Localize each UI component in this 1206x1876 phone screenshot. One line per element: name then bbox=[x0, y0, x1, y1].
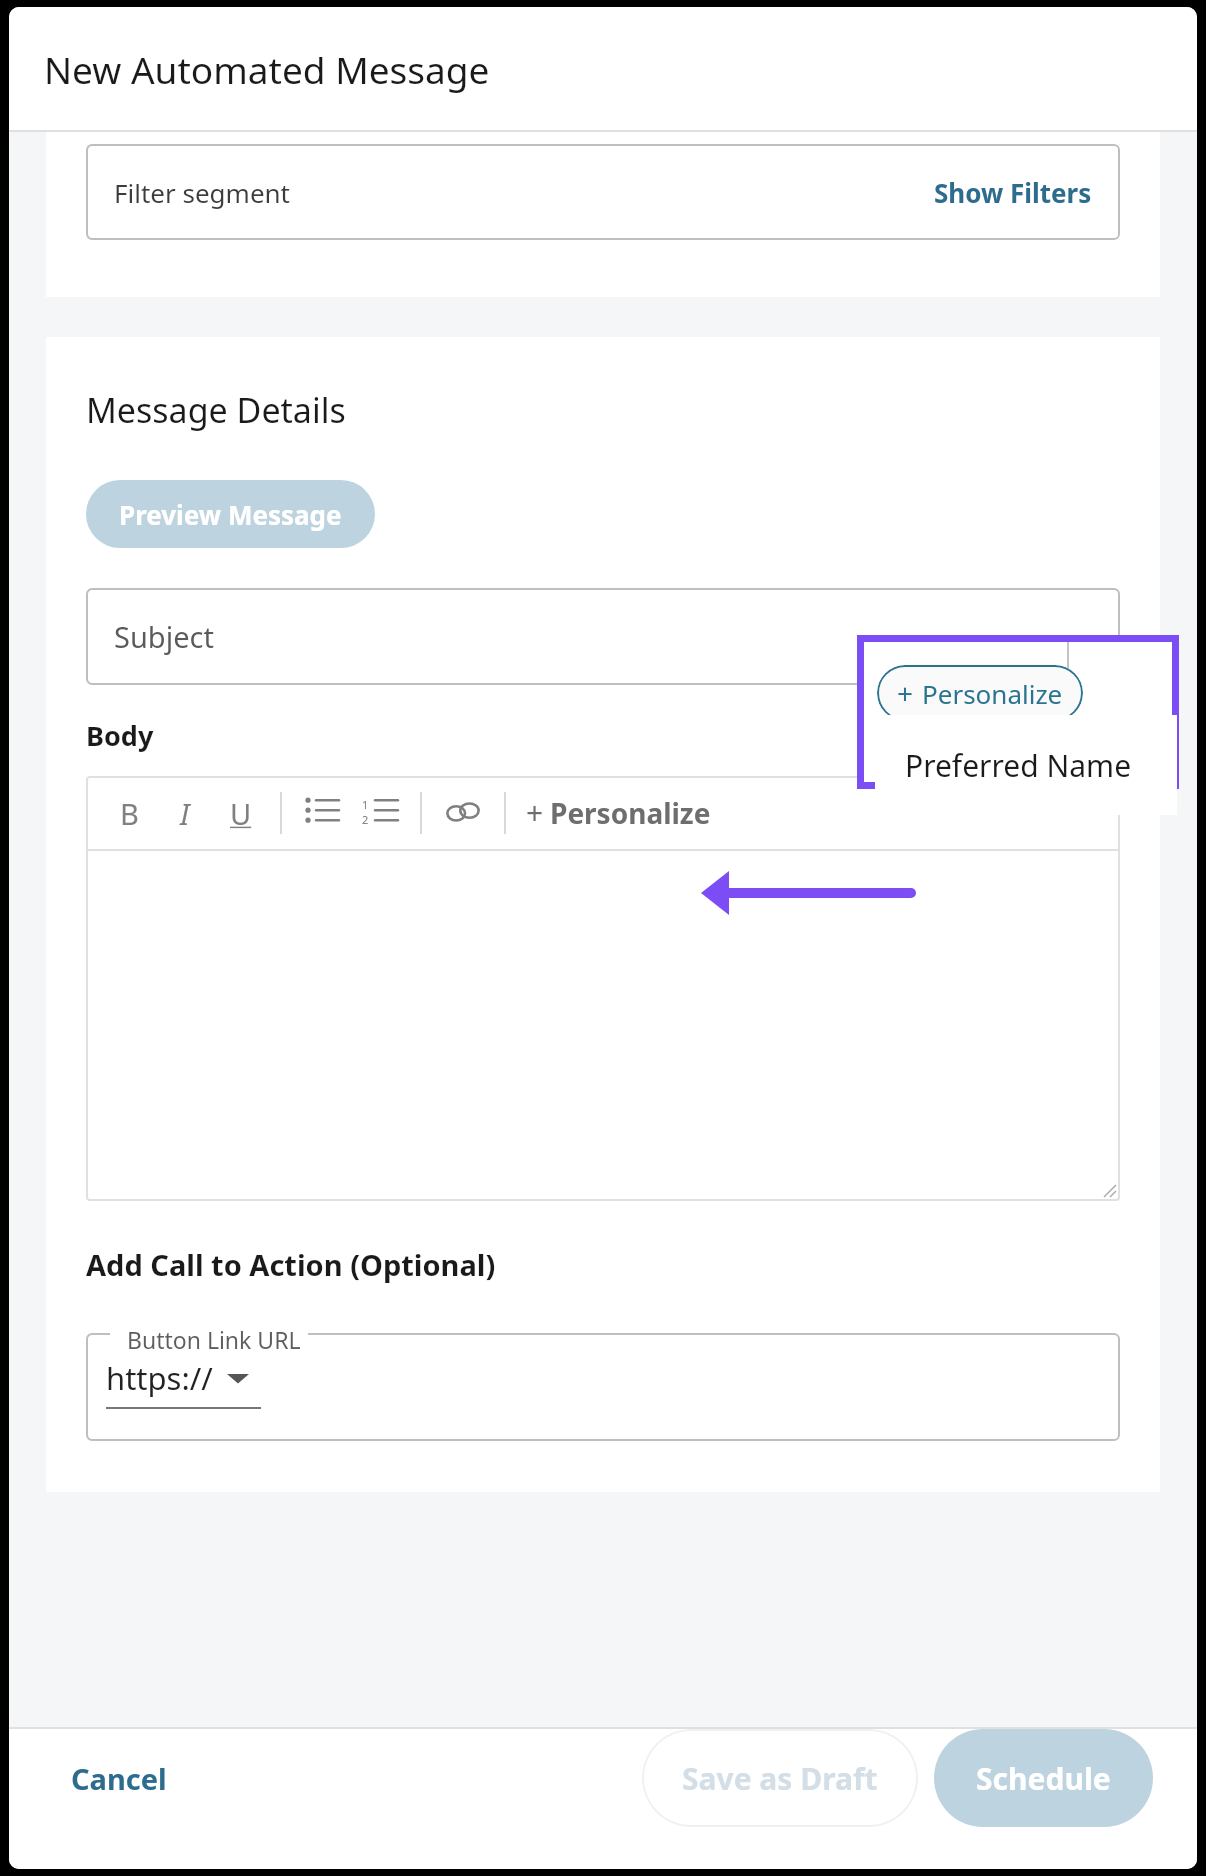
staticText: Filter segment bbox=[114, 175, 290, 210]
staticText: https:// bbox=[106, 1357, 213, 1399]
staticText: Personalize bbox=[922, 676, 1063, 711]
staticText: Subject bbox=[114, 617, 214, 656]
button[interactable]: Bold bbox=[108, 792, 150, 834]
button[interactable]: Underline bbox=[220, 792, 262, 834]
staticText: Save as Draft bbox=[682, 1758, 878, 1799]
button[interactable]: + bbox=[877, 665, 1083, 721]
staticText: I bbox=[180, 794, 190, 833]
staticText: Add Call to Action (Optional) bbox=[86, 1245, 496, 1284]
button[interactable]: Cancel bbox=[53, 1745, 185, 1812]
staticText: Message Details bbox=[86, 387, 346, 433]
staticText: 2 bbox=[362, 812, 369, 827]
button[interactable]: Insert link bbox=[440, 790, 486, 836]
staticText: Preferred Name bbox=[905, 745, 1132, 786]
staticText: Body bbox=[86, 717, 154, 754]
staticText: New Automated Message bbox=[44, 44, 490, 94]
staticText: Personalize bbox=[550, 794, 711, 832]
button[interactable]: https:// bbox=[86, 1333, 1120, 1441]
button[interactable]: Bulleted list bbox=[300, 791, 344, 835]
staticText: Cancel bbox=[71, 1759, 167, 1798]
staticText: Preview Message bbox=[119, 497, 342, 532]
staticText: + bbox=[526, 792, 544, 833]
staticText: B bbox=[120, 794, 139, 833]
button[interactable]: Filter segment bbox=[86, 144, 1120, 240]
staticText: Button Link URL bbox=[127, 1324, 301, 1355]
button[interactable]: Schedule bbox=[934, 1729, 1153, 1827]
staticText: 1 bbox=[362, 797, 369, 812]
button[interactable]: + bbox=[526, 792, 711, 833]
button[interactable]: Numbered list bbox=[358, 791, 402, 835]
staticText: U bbox=[230, 794, 252, 833]
button[interactable]: Save as Draft bbox=[642, 1729, 918, 1827]
button[interactable]: Italic bbox=[164, 792, 206, 834]
staticText: Schedule bbox=[976, 1758, 1111, 1799]
staticText: + bbox=[897, 674, 914, 712]
button[interactable]: Preferred Name bbox=[875, 715, 1177, 815]
button[interactable]: Show Filters bbox=[934, 175, 1092, 210]
button[interactable]: Preview Message bbox=[86, 480, 375, 548]
button[interactable]: Subject bbox=[86, 588, 1120, 685]
